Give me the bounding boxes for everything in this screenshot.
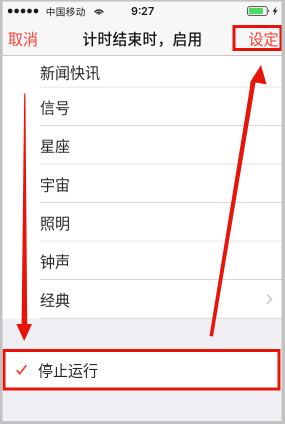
button[interactable]: 新闻快讯 [0,56,285,87]
staticText: 钟声 [40,250,70,272]
button[interactable]: 经典 [0,280,285,318]
staticText: 计时结束时，启用 [82,27,202,49]
button[interactable]: 停止运行 [0,349,285,390]
staticText: 照明 [40,211,70,233]
staticText: 取消 [8,27,38,49]
button[interactable]: 取消 [0,21,46,55]
button[interactable]: 设定 [242,21,285,55]
button[interactable]: 钟声 [0,241,285,280]
button[interactable]: 宇宙 [0,164,285,203]
staticText: 9:27 [131,4,154,18]
staticText: 信号 [40,96,70,118]
staticText: 经典 [40,288,70,310]
staticText: 宇宙 [40,173,70,195]
staticText: 新闻快讯 [40,61,100,83]
button[interactable]: 星座 [0,126,285,164]
staticText: 中国移动 [46,4,86,18]
button[interactable]: 信号 [0,87,285,126]
staticText: 星座 [40,134,70,156]
staticText: 设定 [248,27,278,49]
staticText: 停止运行 [38,359,98,380]
button[interactable]: 照明 [0,203,285,241]
